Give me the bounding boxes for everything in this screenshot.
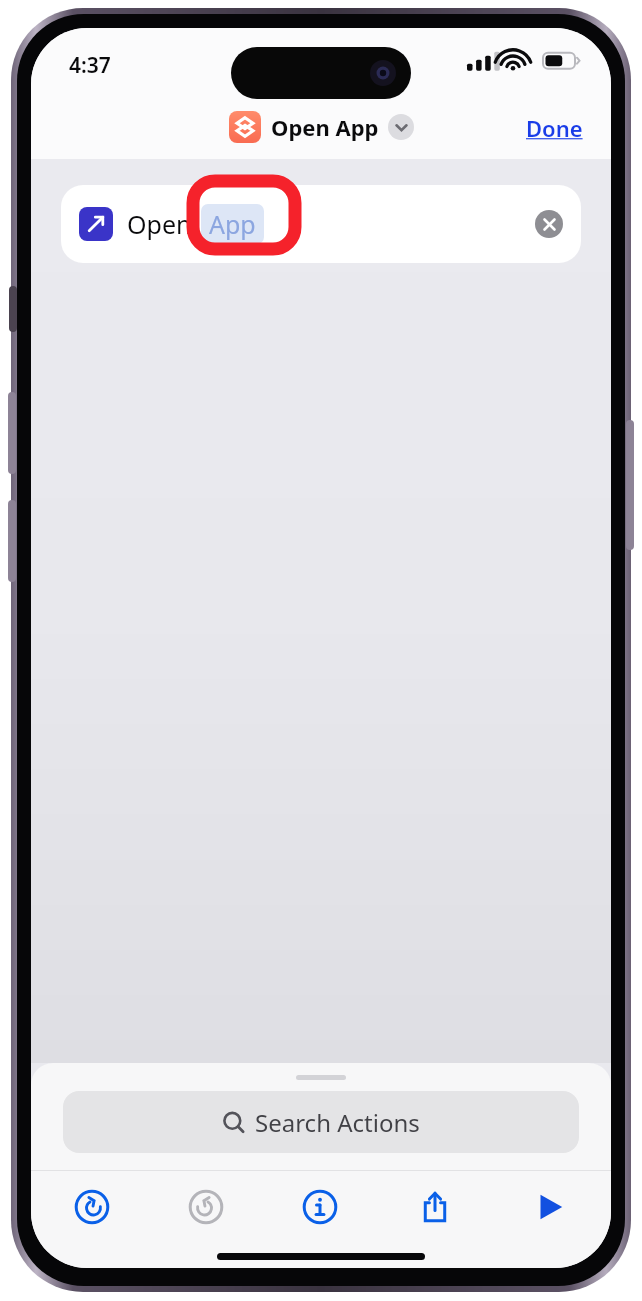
staticText: Open bbox=[127, 207, 192, 241]
button[interactable]: Redo bbox=[179, 1180, 233, 1234]
button[interactable]: Share bbox=[408, 1180, 462, 1234]
button[interactable]: Undo bbox=[65, 1180, 119, 1234]
button[interactable]: Open App bbox=[229, 111, 414, 143]
button[interactable]: Run shortcut bbox=[523, 1180, 577, 1234]
button[interactable]: App bbox=[201, 204, 264, 244]
button[interactable]: Open bbox=[61, 185, 581, 263]
staticText: Open App bbox=[271, 112, 379, 142]
button[interactable]: Info bbox=[293, 1180, 347, 1234]
staticText: App bbox=[209, 207, 256, 241]
button[interactable]: Search Actions bbox=[63, 1091, 579, 1153]
staticText: Done bbox=[526, 113, 583, 143]
staticText: 4:37 bbox=[69, 51, 111, 80]
button[interactable]: Done bbox=[522, 109, 587, 147]
button[interactable]: Show more options bbox=[388, 114, 414, 140]
staticText: Search Actions bbox=[255, 1106, 420, 1139]
button[interactable]: Remove action bbox=[535, 210, 563, 238]
